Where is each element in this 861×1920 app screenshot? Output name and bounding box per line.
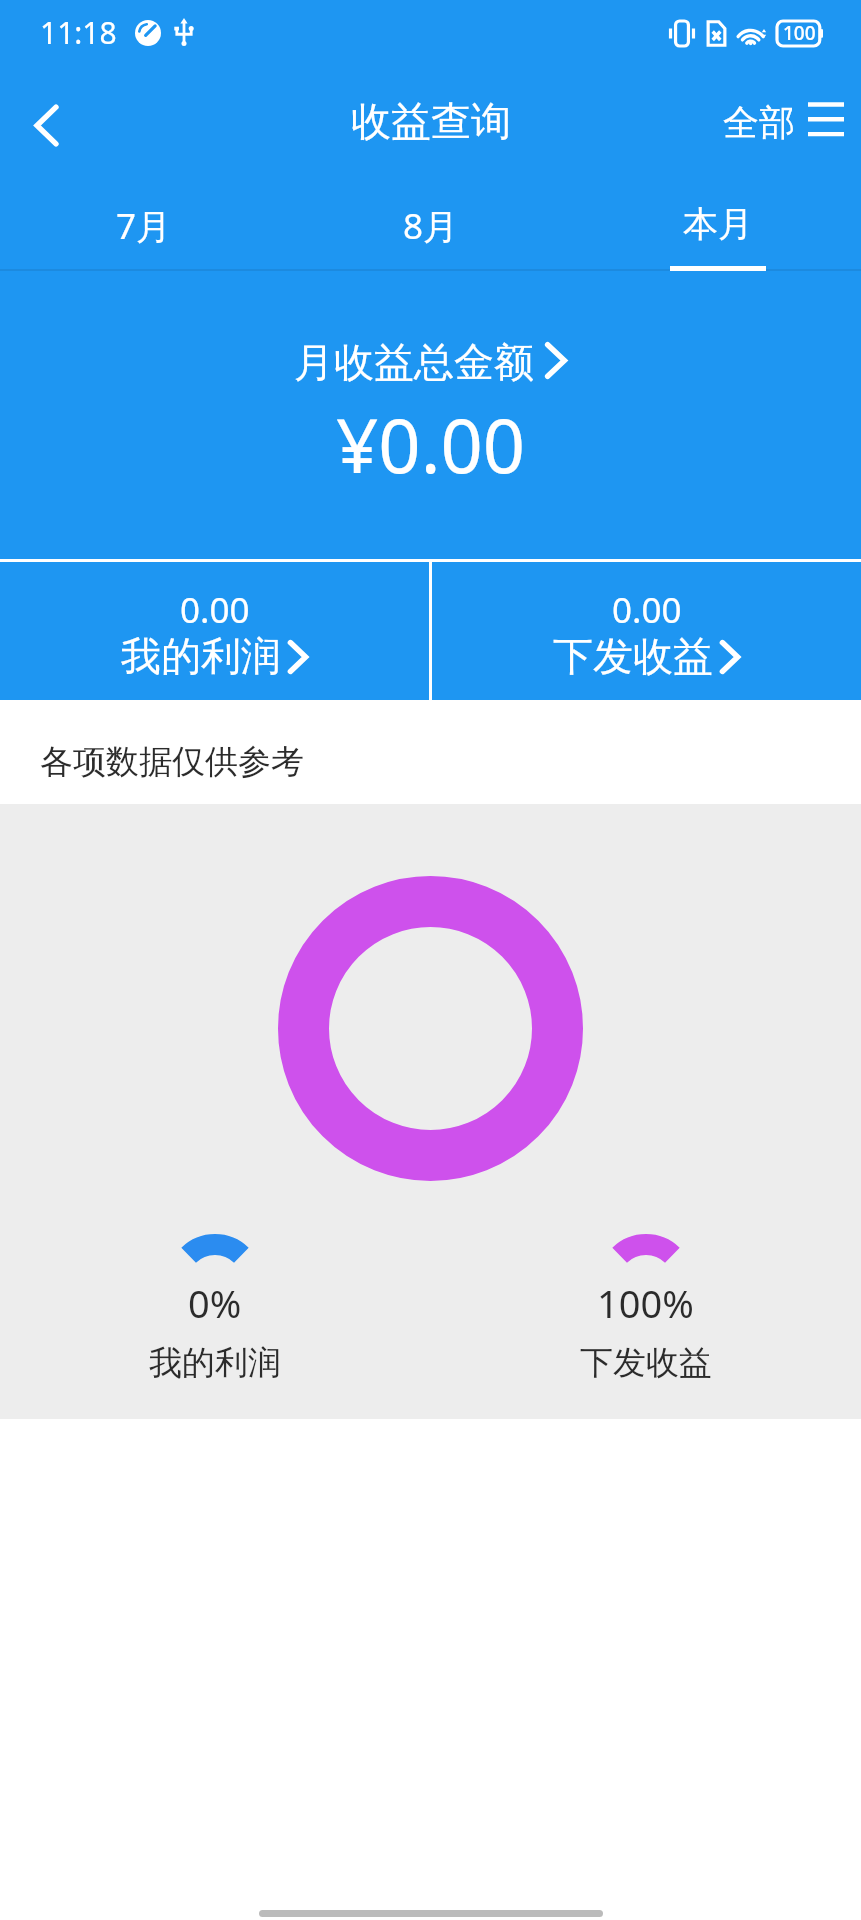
staticText: 100% <box>597 1277 694 1329</box>
staticText: ¥0.00 <box>336 394 526 495</box>
staticText: 11:18 <box>40 12 117 53</box>
staticText: 月收益总金额 <box>294 337 534 387</box>
staticText: 下发收益 <box>580 1342 712 1384</box>
staticText: 8月 <box>403 202 459 250</box>
button[interactable]: 本月 <box>574 175 861 271</box>
staticText: 0.00 <box>180 586 250 634</box>
staticText: 7月 <box>116 202 172 250</box>
button[interactable]: 0.00 <box>0 562 429 700</box>
staticText: 我的利润 <box>121 631 281 681</box>
button[interactable]: 8月 <box>287 175 574 271</box>
button[interactable]: 返回 <box>13 92 79 158</box>
staticText: 全部 <box>723 100 795 145</box>
button[interactable]: 0.00 <box>432 562 861 700</box>
button[interactable]: 7月 <box>0 175 287 271</box>
staticText: 收益查询 <box>351 96 511 146</box>
staticText: 0% <box>188 1277 242 1329</box>
staticText: 0.00 <box>612 586 682 634</box>
staticText: 我的利润 <box>149 1342 281 1384</box>
button[interactable]: 月收益总金额 <box>0 271 861 559</box>
staticText: 各项数据仅供参考 <box>40 741 304 783</box>
staticText: 100 <box>783 20 816 46</box>
staticText: 下发收益 <box>553 631 713 681</box>
staticText: 本月 <box>683 202 753 246</box>
button[interactable]: 全部 <box>712 80 852 160</box>
